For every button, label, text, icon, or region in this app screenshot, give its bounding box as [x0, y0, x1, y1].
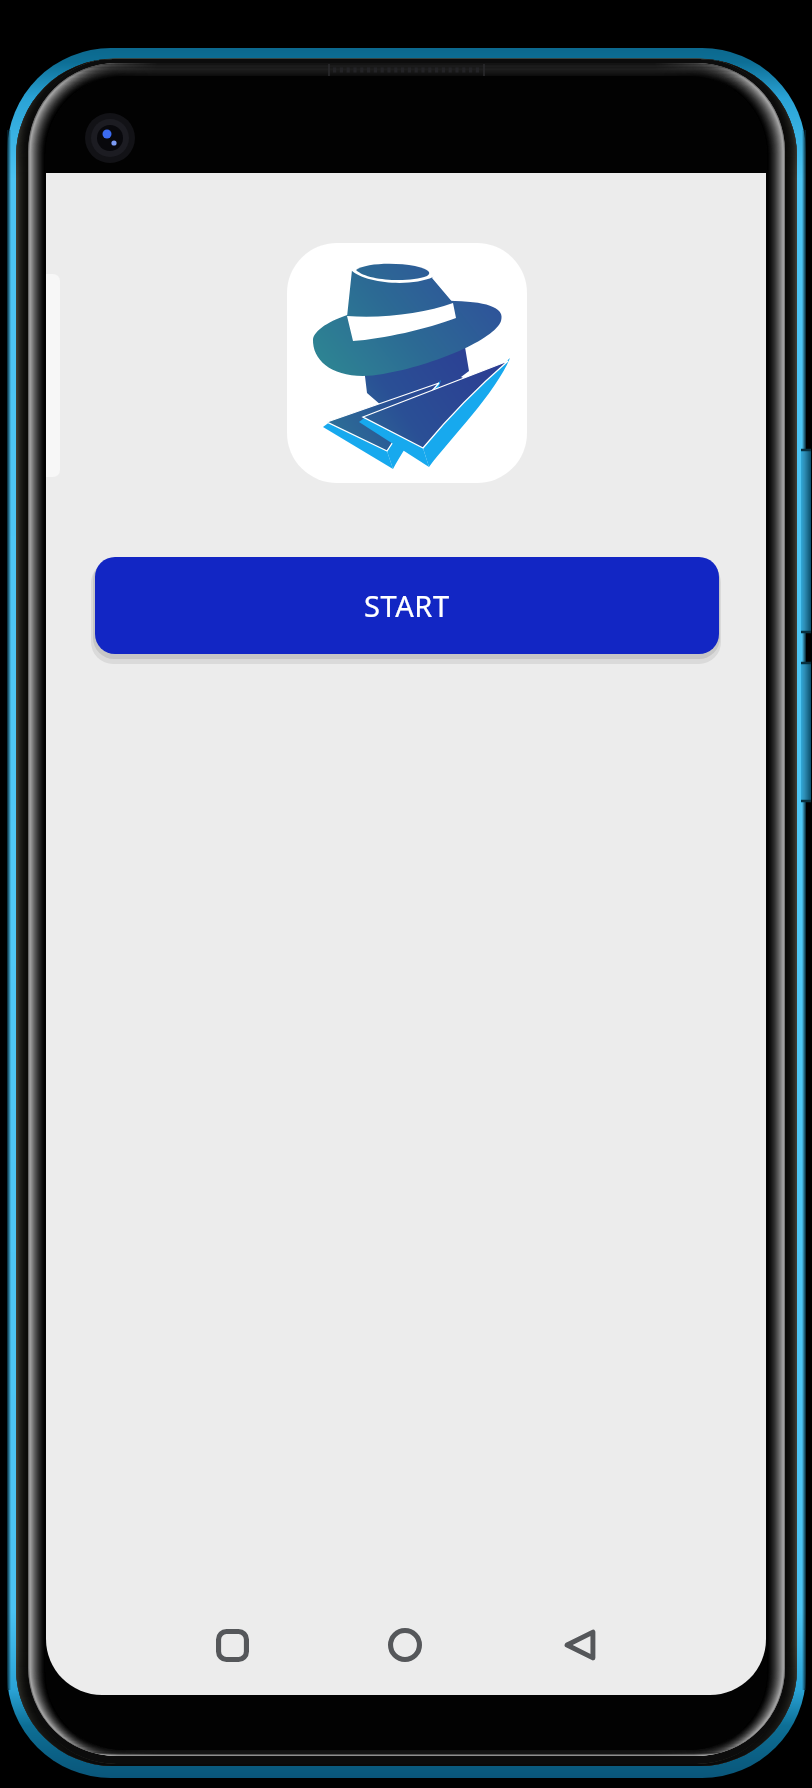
button[interactable]: Home: [365, 1605, 445, 1685]
staticText: START: [364, 586, 450, 625]
button[interactable]: Back: [540, 1605, 620, 1685]
button[interactable]: START: [95, 557, 719, 654]
button[interactable]: Recents: [192, 1605, 272, 1685]
